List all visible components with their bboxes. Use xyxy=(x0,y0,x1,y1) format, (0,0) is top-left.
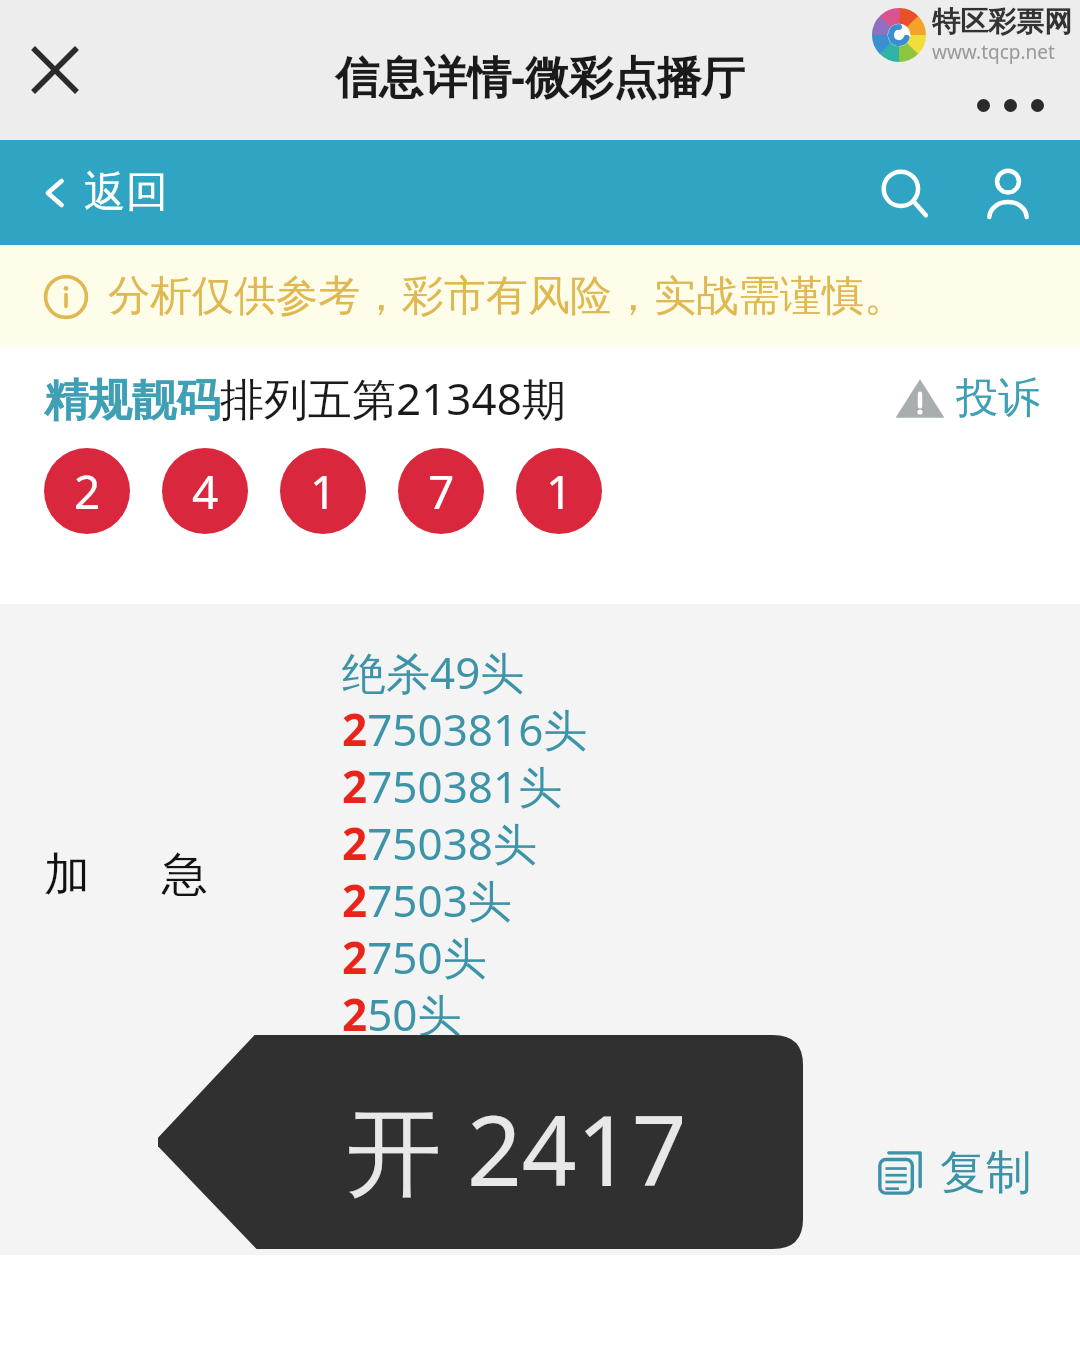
staticText: 250头 xyxy=(342,984,462,1041)
button[interactable]: 复制 xyxy=(868,1140,1036,1206)
staticText: 投诉 xyxy=(956,372,1040,425)
button[interactable]: 开 2417 xyxy=(158,1035,803,1249)
staticText: 1 xyxy=(546,460,573,523)
button[interactable]: 投诉 xyxy=(894,372,1040,425)
staticText: 4 xyxy=(192,460,219,523)
staticText: www.tqcp.net xyxy=(932,39,1055,65)
staticText: 信息详情-微彩点播厅 xyxy=(335,46,746,106)
staticText: 绝杀49头 xyxy=(342,642,525,699)
button[interactable]: More options xyxy=(971,93,1050,118)
staticText: 复制 xyxy=(940,1144,1032,1202)
staticText: 27503816头 xyxy=(342,699,588,756)
staticText: 275038头 xyxy=(342,813,538,870)
staticText: 27503头 xyxy=(342,870,512,927)
button[interactable]: Search xyxy=(872,161,936,225)
staticText: 2 xyxy=(74,460,101,523)
staticText: 2750381头 xyxy=(342,756,563,813)
staticText: 加 急 xyxy=(44,841,208,904)
staticText: 2750头 xyxy=(342,927,487,984)
staticText: 分析仅供参考，彩市有风险，实战需谨慎。 xyxy=(108,270,906,323)
staticText: 1 xyxy=(310,460,337,523)
button[interactable]: 返回 xyxy=(34,158,174,227)
staticText: 特区彩票网 xyxy=(932,4,1072,39)
staticText: 开 2417 xyxy=(346,1083,687,1214)
staticText: 7 xyxy=(428,460,455,523)
button[interactable]: Close xyxy=(18,33,92,107)
button[interactable]: Profile xyxy=(976,161,1040,225)
staticText: 精规靓码排列五第21348期 xyxy=(44,368,566,428)
staticText: 返回 xyxy=(84,166,168,219)
